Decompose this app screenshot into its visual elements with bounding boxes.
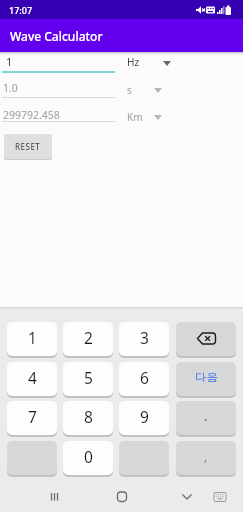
button[interactable]: 1	[0, 52, 120, 75]
staticText: Km	[127, 110, 143, 124]
staticText: 9	[140, 406, 149, 427]
staticText: s	[127, 83, 132, 97]
button[interactable]	[176, 322, 236, 356]
button[interactable]: 5	[63, 362, 113, 396]
staticText: 2	[84, 327, 93, 348]
staticText: 4	[28, 367, 37, 388]
button[interactable]: 1	[7, 322, 57, 356]
button[interactable]: ,	[176, 441, 236, 475]
staticText: 8	[84, 406, 93, 427]
button[interactable]: 4	[7, 362, 57, 396]
button[interactable]: RESET	[4, 134, 52, 159]
button[interactable]: 다음	[176, 362, 236, 396]
button[interactable]: 9	[119, 401, 169, 435]
staticText: 0	[84, 446, 93, 467]
staticText: RESET	[15, 141, 41, 152]
button[interactable]: 0	[63, 441, 113, 475]
staticText: Wave Calculator	[10, 28, 103, 44]
staticText: 1.0	[3, 81, 18, 95]
button[interactable]: 7	[7, 401, 57, 435]
button[interactable]: 2	[63, 322, 113, 356]
staticText: Hz	[127, 55, 140, 69]
staticText: 1	[28, 327, 37, 348]
staticText: 1	[6, 54, 13, 69]
staticText: 6	[140, 367, 149, 388]
staticText: 5	[84, 367, 93, 388]
staticText: 다음	[195, 370, 218, 384]
button[interactable]: Hz	[122, 52, 182, 74]
staticText: 7	[28, 406, 37, 427]
staticText: 17:07	[9, 4, 33, 16]
button[interactable]: .	[176, 401, 236, 435]
staticText: ,	[204, 448, 208, 464]
staticText: .	[204, 407, 208, 425]
staticText: 3	[140, 327, 149, 348]
button[interactable]: 3	[119, 322, 169, 356]
staticText: 299792.458	[3, 108, 60, 122]
button[interactable]: 6	[119, 362, 169, 396]
button[interactable]: 8	[63, 401, 113, 435]
